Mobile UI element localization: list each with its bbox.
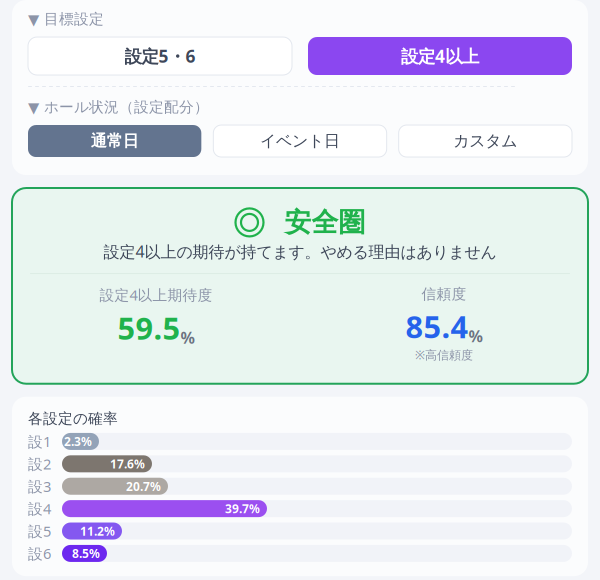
staticText: 設4 xyxy=(28,499,51,518)
staticText: 8.5% xyxy=(72,545,100,561)
button[interactable]: 設定5・6 xyxy=(28,37,292,75)
staticText: 設2 xyxy=(28,454,51,474)
staticText: 設定4以上の期待が持てます。やめる理由はありません xyxy=(103,241,496,262)
staticText: 安全圏 xyxy=(284,206,365,239)
staticText: ▼ ホール状況（設定配分） xyxy=(28,98,209,116)
staticText: 59.5 xyxy=(117,307,180,348)
staticText: ▼ 目標設定 xyxy=(28,10,104,28)
staticText: 11.2% xyxy=(80,523,115,539)
button[interactable]: 設定4以上 xyxy=(308,37,572,75)
staticText: % xyxy=(468,325,482,347)
staticText: 20.7% xyxy=(126,478,161,494)
button[interactable]: カスタム xyxy=(399,125,572,157)
staticText: 信頼度 xyxy=(421,285,466,303)
staticText: 設1 xyxy=(28,432,51,451)
staticText: 設定4以上 xyxy=(401,44,479,67)
staticText: カスタム xyxy=(453,131,517,151)
staticText: 17.6% xyxy=(110,456,145,472)
staticText: % xyxy=(180,327,194,348)
button[interactable]: 通常日 xyxy=(28,125,201,157)
staticText: 各設定の確率 xyxy=(28,410,118,428)
button[interactable]: イベント日 xyxy=(213,125,387,157)
staticText: 設5 xyxy=(28,521,51,541)
staticText: 設定5・6 xyxy=(124,44,195,67)
staticText: 39.7% xyxy=(225,501,260,517)
staticText: イベント日 xyxy=(260,131,340,151)
staticText: 85.4 xyxy=(405,306,468,347)
staticText: 2.3% xyxy=(64,433,92,449)
staticText: 設6 xyxy=(28,544,51,563)
staticText: 設3 xyxy=(28,476,51,496)
staticText: ※高信頼度 xyxy=(415,347,473,363)
staticText: 設定4以上期待度 xyxy=(99,285,212,304)
staticText: 通常日 xyxy=(91,131,139,151)
